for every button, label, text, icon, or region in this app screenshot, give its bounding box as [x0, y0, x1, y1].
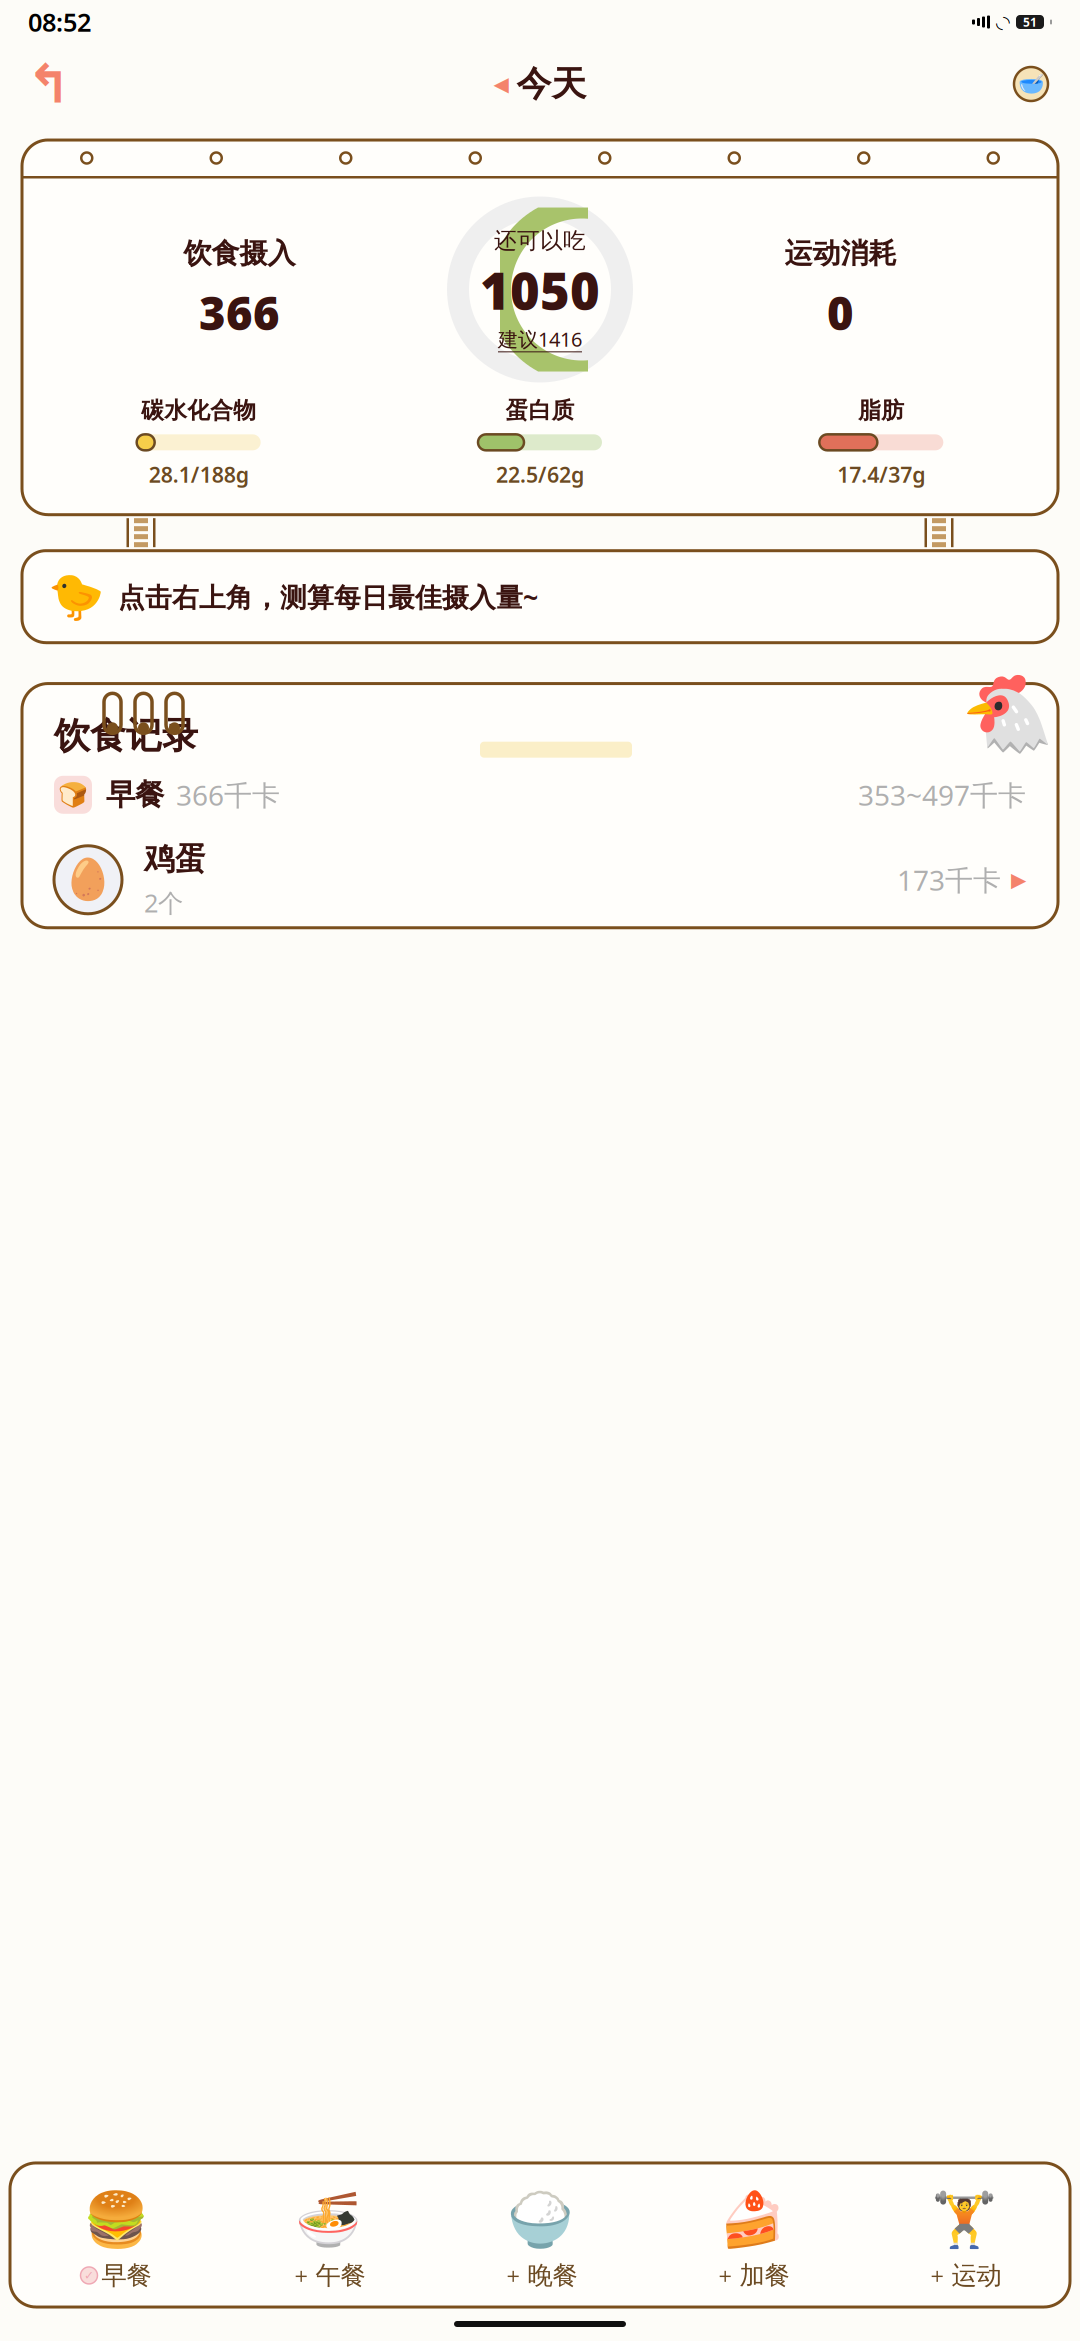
staticText: 脂肪	[858, 396, 904, 424]
staticText: 🥚	[63, 857, 113, 903]
staticText: 🐤	[48, 571, 104, 623]
staticText: ↰	[26, 54, 71, 114]
staticText: 17.4/37g	[837, 460, 925, 489]
button[interactable]: 🍜	[222, 2189, 434, 2291]
button[interactable]: 🍚	[434, 2189, 646, 2291]
staticText: 366	[199, 283, 280, 343]
staticText: 🥣	[1017, 72, 1044, 96]
staticText: 🍚	[507, 2189, 573, 2250]
staticText: 运动消耗	[784, 236, 896, 271]
staticText: 加餐	[739, 2260, 789, 2291]
staticText: 建议1416	[498, 326, 582, 352]
staticText: 1050	[480, 256, 600, 324]
staticText: ✓	[84, 2269, 94, 2282]
staticText: ＋	[714, 2262, 735, 2288]
staticText: 51	[1023, 14, 1037, 30]
staticText: 鸡蛋	[144, 840, 206, 878]
button[interactable]: 🍞	[22, 758, 1058, 832]
staticText: 2个	[144, 886, 183, 919]
button[interactable]: 🍰	[646, 2189, 858, 2291]
staticText: 🍔	[83, 2189, 149, 2250]
staticText: 353~497千卡	[858, 776, 1026, 813]
staticText: 还可以吃	[494, 227, 586, 254]
staticText: 晚餐	[527, 2260, 577, 2291]
staticText: 蛋白质	[505, 396, 574, 424]
staticText: 运动	[951, 2260, 1001, 2291]
staticText: 🏋	[931, 2189, 997, 2250]
button[interactable]: 测算每日最佳摄入量	[1004, 57, 1058, 111]
staticText: 28.1/188g	[149, 460, 249, 489]
staticText: 🐔	[961, 671, 1054, 756]
button[interactable]: 返回	[22, 57, 76, 111]
staticText: 08:52	[28, 5, 91, 39]
staticText: ◀	[493, 73, 508, 95]
staticText: 早餐	[106, 777, 164, 813]
staticText: 饮食记录	[54, 714, 198, 758]
staticText: 点击右上角，测算每日最佳摄入量~	[118, 579, 538, 614]
staticText: 🍰	[719, 2189, 785, 2250]
staticText: 🍞	[58, 781, 88, 808]
staticText: 饮食摄入	[183, 236, 295, 271]
button[interactable]: 🏋	[858, 2189, 1070, 2291]
button[interactable]: 🐤	[22, 551, 1058, 643]
staticText: 🍜	[295, 2189, 361, 2250]
staticText: 午餐	[315, 2260, 365, 2291]
staticText: 碳水化合物	[141, 396, 256, 424]
staticText: 22.5/62g	[496, 460, 584, 489]
staticText: 今天	[516, 63, 586, 105]
button[interactable]: 🍔	[10, 2189, 222, 2291]
staticText: ▶	[1011, 868, 1026, 891]
staticText: 173千卡	[897, 861, 1001, 898]
staticText: 0	[827, 283, 854, 343]
button[interactable]: 🥚	[22, 832, 1058, 928]
staticText: ＋	[502, 2262, 523, 2288]
staticText: 366千卡	[176, 776, 280, 813]
staticText: ◟◝	[996, 12, 1010, 32]
staticText: ＋	[290, 2262, 311, 2288]
staticText: ＋	[926, 2262, 947, 2288]
staticText: 早餐	[101, 2260, 151, 2291]
